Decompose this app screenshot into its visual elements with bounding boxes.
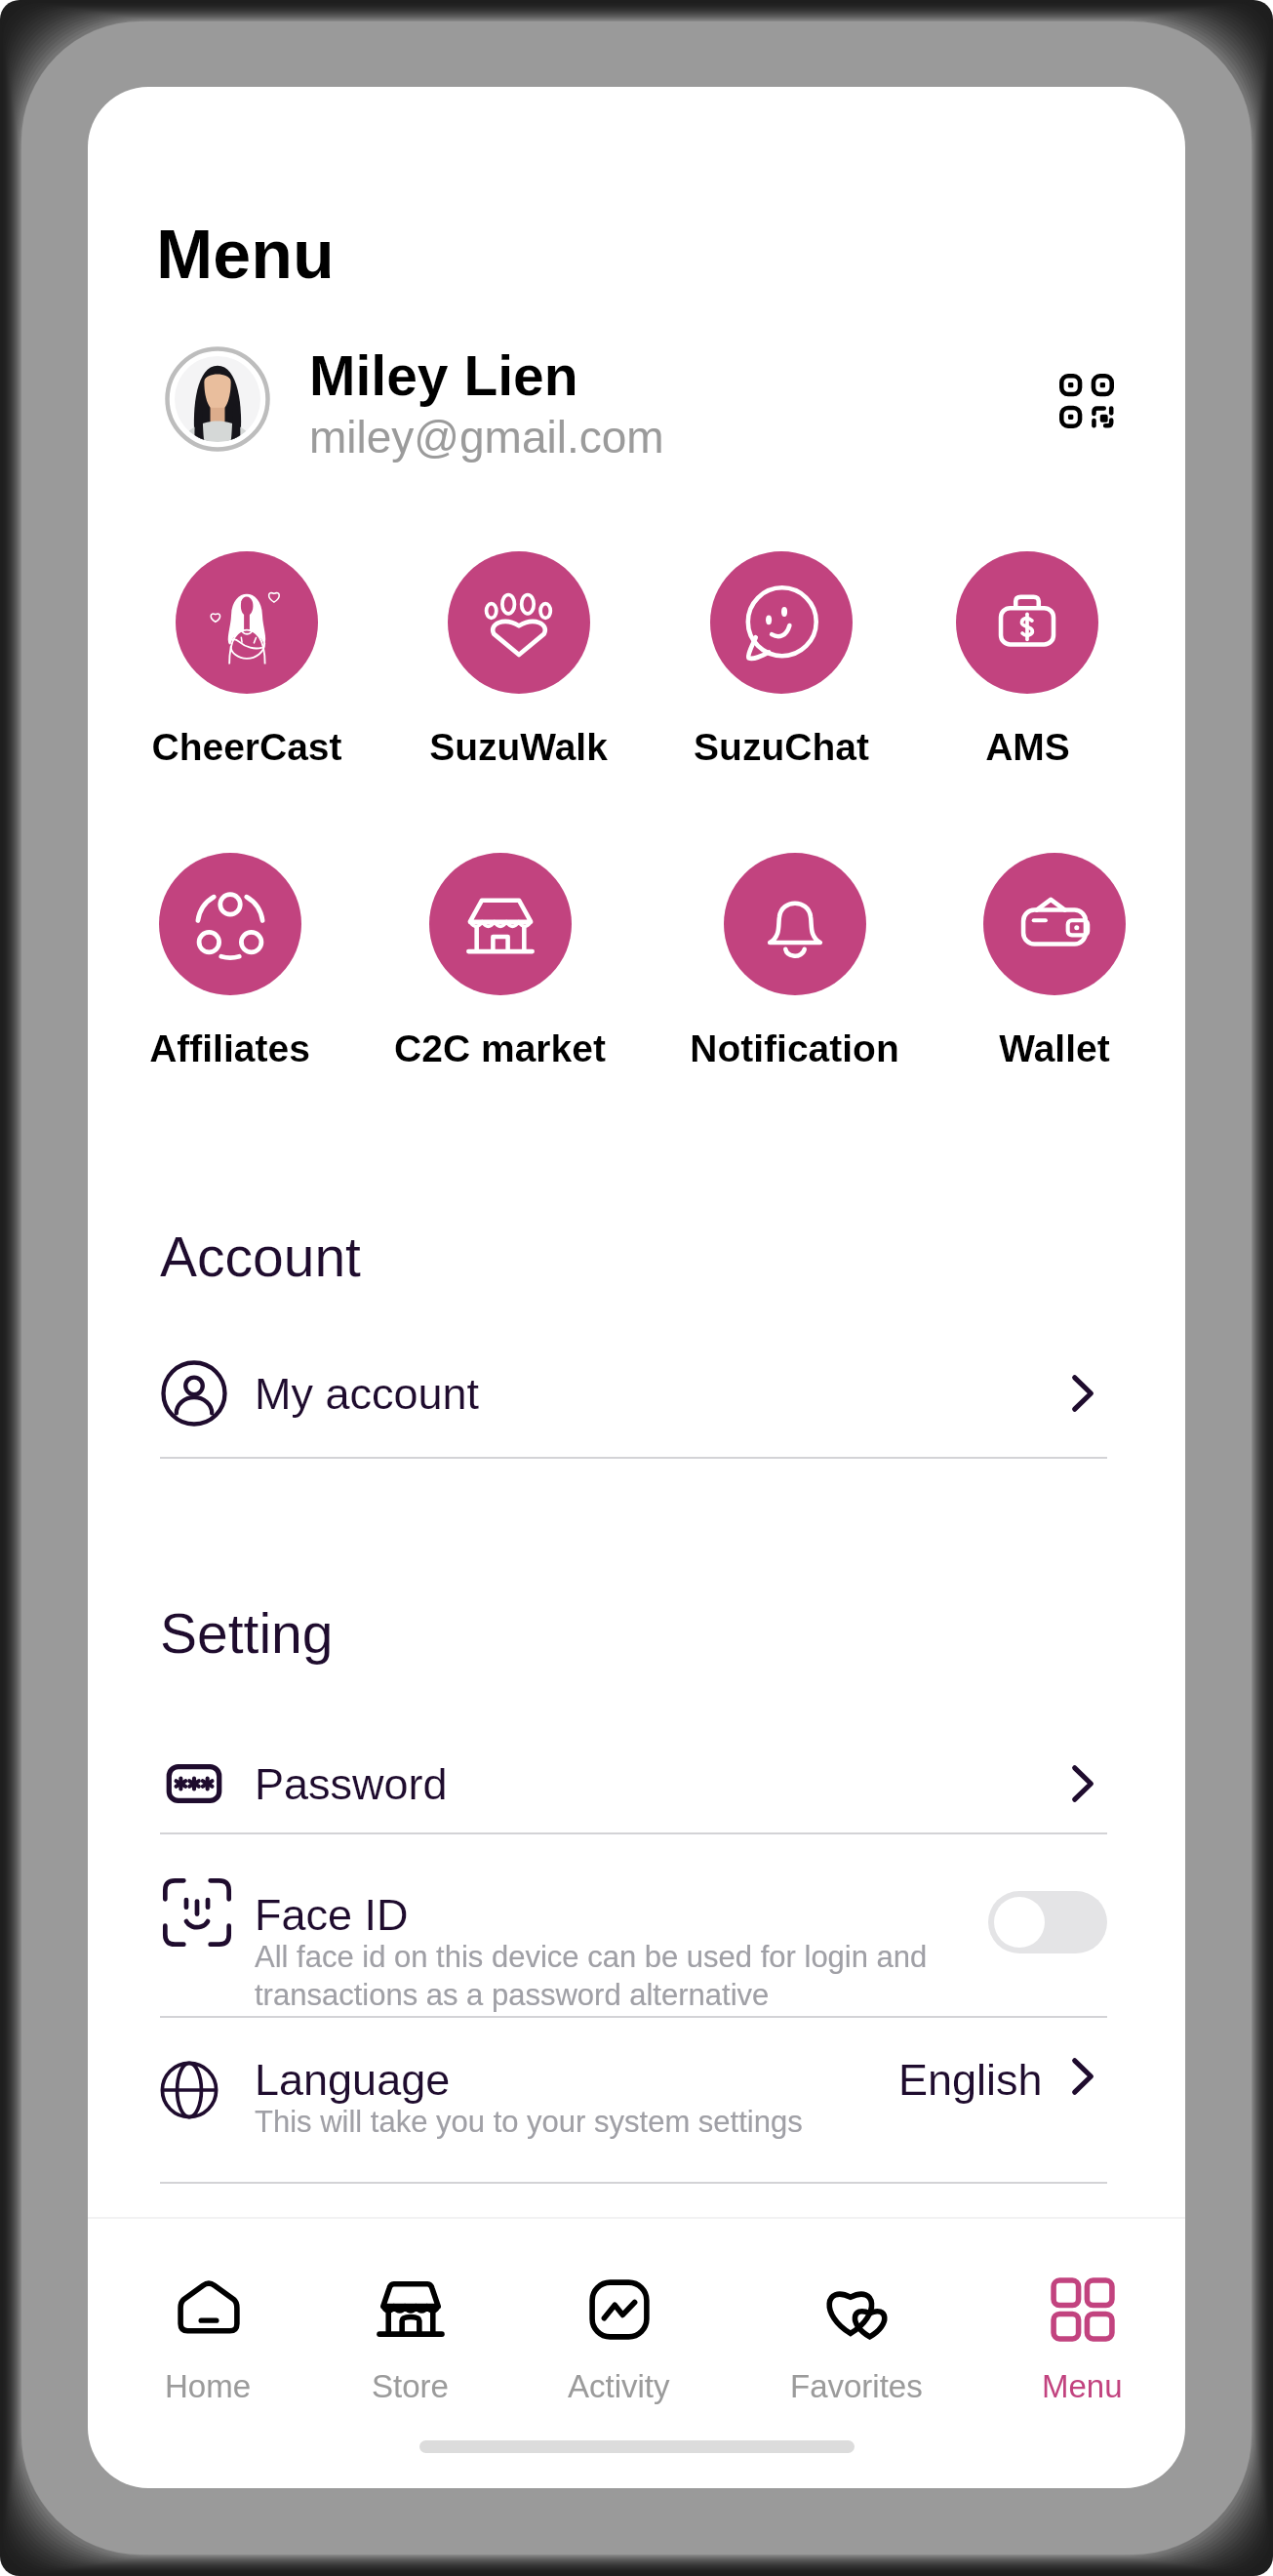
staticText: Miley Lien — [309, 344, 578, 407]
staticText: SuzuChat — [694, 726, 869, 769]
button[interactable]: Affiliates — [149, 853, 310, 1070]
button[interactable]: SuzuChat — [694, 551, 869, 769]
staticText: Activity — [568, 2368, 670, 2404]
staticText: AMS — [985, 726, 1070, 769]
button[interactable]: Home — [165, 2276, 252, 2404]
button[interactable]: AMS — [956, 551, 1098, 769]
button[interactable]: SuzuWalk — [429, 551, 608, 769]
button[interactable]: Activity — [568, 2276, 670, 2404]
button[interactable]: C2C market — [394, 853, 606, 1070]
staticText: Account — [160, 1226, 361, 1288]
staticText: Store — [372, 2368, 449, 2404]
staticText: Notification — [690, 1027, 899, 1070]
button[interactable]: Scan QR code — [1042, 356, 1132, 446]
staticText: My account — [255, 1369, 480, 1418]
button[interactable]: Face ID toggle — [988, 1891, 1107, 1953]
staticText: CheerCast — [151, 726, 342, 769]
staticText: Favorites — [790, 2368, 923, 2404]
staticText: miley@gmail.com — [309, 412, 664, 462]
staticText: SuzuWalk — [429, 726, 608, 769]
button[interactable]: Wallet — [983, 853, 1126, 1070]
button[interactable]: Profile photo — [165, 346, 270, 452]
button[interactable]: Face ID — [160, 1875, 1107, 2012]
button[interactable]: Menu — [1042, 2276, 1123, 2404]
button[interactable]: Notification — [690, 853, 899, 1070]
staticText: Language — [255, 2055, 451, 2104]
staticText: Face ID — [255, 1890, 409, 1939]
button[interactable]: My account — [160, 1355, 1107, 1431]
staticText: Home — [165, 2368, 252, 2404]
staticText: Menu — [156, 217, 335, 293]
button[interactable]: CheerCast — [151, 551, 342, 769]
staticText: Affiliates — [149, 1027, 310, 1070]
staticText: Menu — [1042, 2368, 1123, 2404]
staticText: This will take you to your system settin… — [255, 2105, 803, 2139]
staticText: English — [898, 2055, 1043, 2104]
button[interactable]: Password — [160, 1746, 1107, 1822]
button[interactable]: Language — [160, 2055, 1107, 2139]
staticText: Wallet — [999, 1027, 1110, 1070]
button[interactable]: Favorites — [790, 2276, 923, 2404]
button[interactable]: Miley Lien — [309, 344, 992, 462]
staticText: All face id on this device can be used f… — [255, 1940, 937, 2012]
staticText: Setting — [160, 1602, 334, 1665]
button[interactable]: Store — [372, 2276, 449, 2404]
staticText: C2C market — [394, 1027, 606, 1070]
staticText: Password — [255, 1759, 448, 1808]
